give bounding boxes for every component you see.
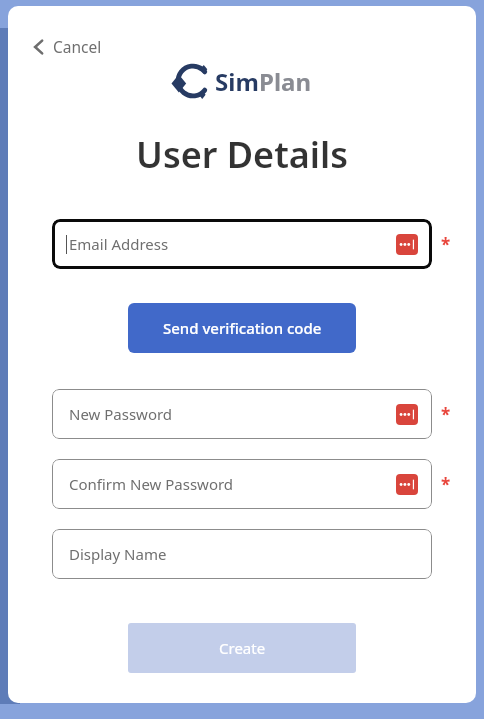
- button[interactable]: Display Name: [52, 529, 432, 579]
- button[interactable]: Email Address: [52, 219, 432, 269]
- button[interactable]: Autofill password: [396, 474, 418, 495]
- staticText: User Details: [8, 130, 476, 179]
- button[interactable]: Autofill password: [396, 234, 418, 255]
- staticText: Sim: [215, 65, 259, 98]
- staticText: Email Address: [69, 234, 169, 254]
- staticText: New Password: [69, 404, 173, 424]
- button[interactable]: Autofill password: [396, 404, 418, 425]
- button[interactable]: Send verification code: [128, 303, 356, 353]
- staticText: Confirm New Password: [69, 474, 234, 494]
- button[interactable]: Create: [128, 623, 356, 673]
- button[interactable]: Confirm New Password: [52, 459, 432, 509]
- staticText: *: [441, 233, 451, 256]
- staticText: Plan: [259, 65, 312, 98]
- staticText: *: [441, 403, 451, 426]
- button[interactable]: Cancel: [26, 32, 108, 61]
- staticText: Create: [219, 638, 266, 658]
- staticText: Display Name: [69, 544, 167, 564]
- staticText: Cancel: [53, 36, 102, 57]
- button[interactable]: New Password: [52, 389, 432, 439]
- staticText: Send verification code: [163, 318, 322, 338]
- staticText: *: [441, 473, 451, 496]
